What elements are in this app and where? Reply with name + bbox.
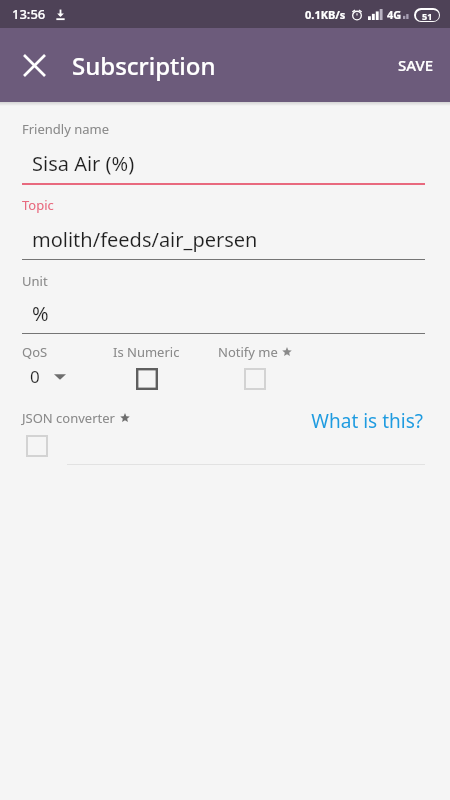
button[interactable]: What is this?	[309, 406, 425, 436]
button[interactable]: JSON converter	[22, 409, 130, 457]
staticText: %	[32, 300, 49, 327]
staticText: 51	[422, 10, 433, 21]
button[interactable]: %	[22, 300, 425, 334]
staticText: SAVE	[398, 55, 434, 75]
button[interactable]: Is Numeric	[113, 343, 180, 390]
staticText: Friendly name	[22, 120, 110, 138]
staticText: JSON converter	[22, 409, 115, 427]
button[interactable]: Sisa Air (%)	[22, 150, 425, 185]
staticText: Sisa Air (%)	[32, 150, 135, 177]
staticText: Subscription	[72, 49, 216, 82]
staticText: 0.1KB/s	[305, 7, 346, 22]
staticText: 13:56	[12, 5, 46, 23]
staticText: Topic	[22, 196, 54, 214]
staticText: Is Numeric	[113, 343, 180, 361]
staticText: 0	[30, 365, 40, 388]
staticText: QoS	[22, 343, 48, 361]
button[interactable]: SAVE	[382, 41, 450, 89]
staticText: molith/feeds/air_persen	[32, 226, 258, 253]
button[interactable]: QoS	[22, 343, 66, 388]
staticText: Unit	[22, 272, 48, 290]
staticText: 4G	[387, 7, 402, 22]
staticText: Notify me	[218, 343, 278, 361]
button[interactable]: Close	[10, 41, 58, 89]
button[interactable]: Notify me	[218, 343, 292, 390]
button[interactable]: molith/feeds/air_persen	[22, 226, 425, 260]
staticText: What is this?	[311, 408, 423, 434]
